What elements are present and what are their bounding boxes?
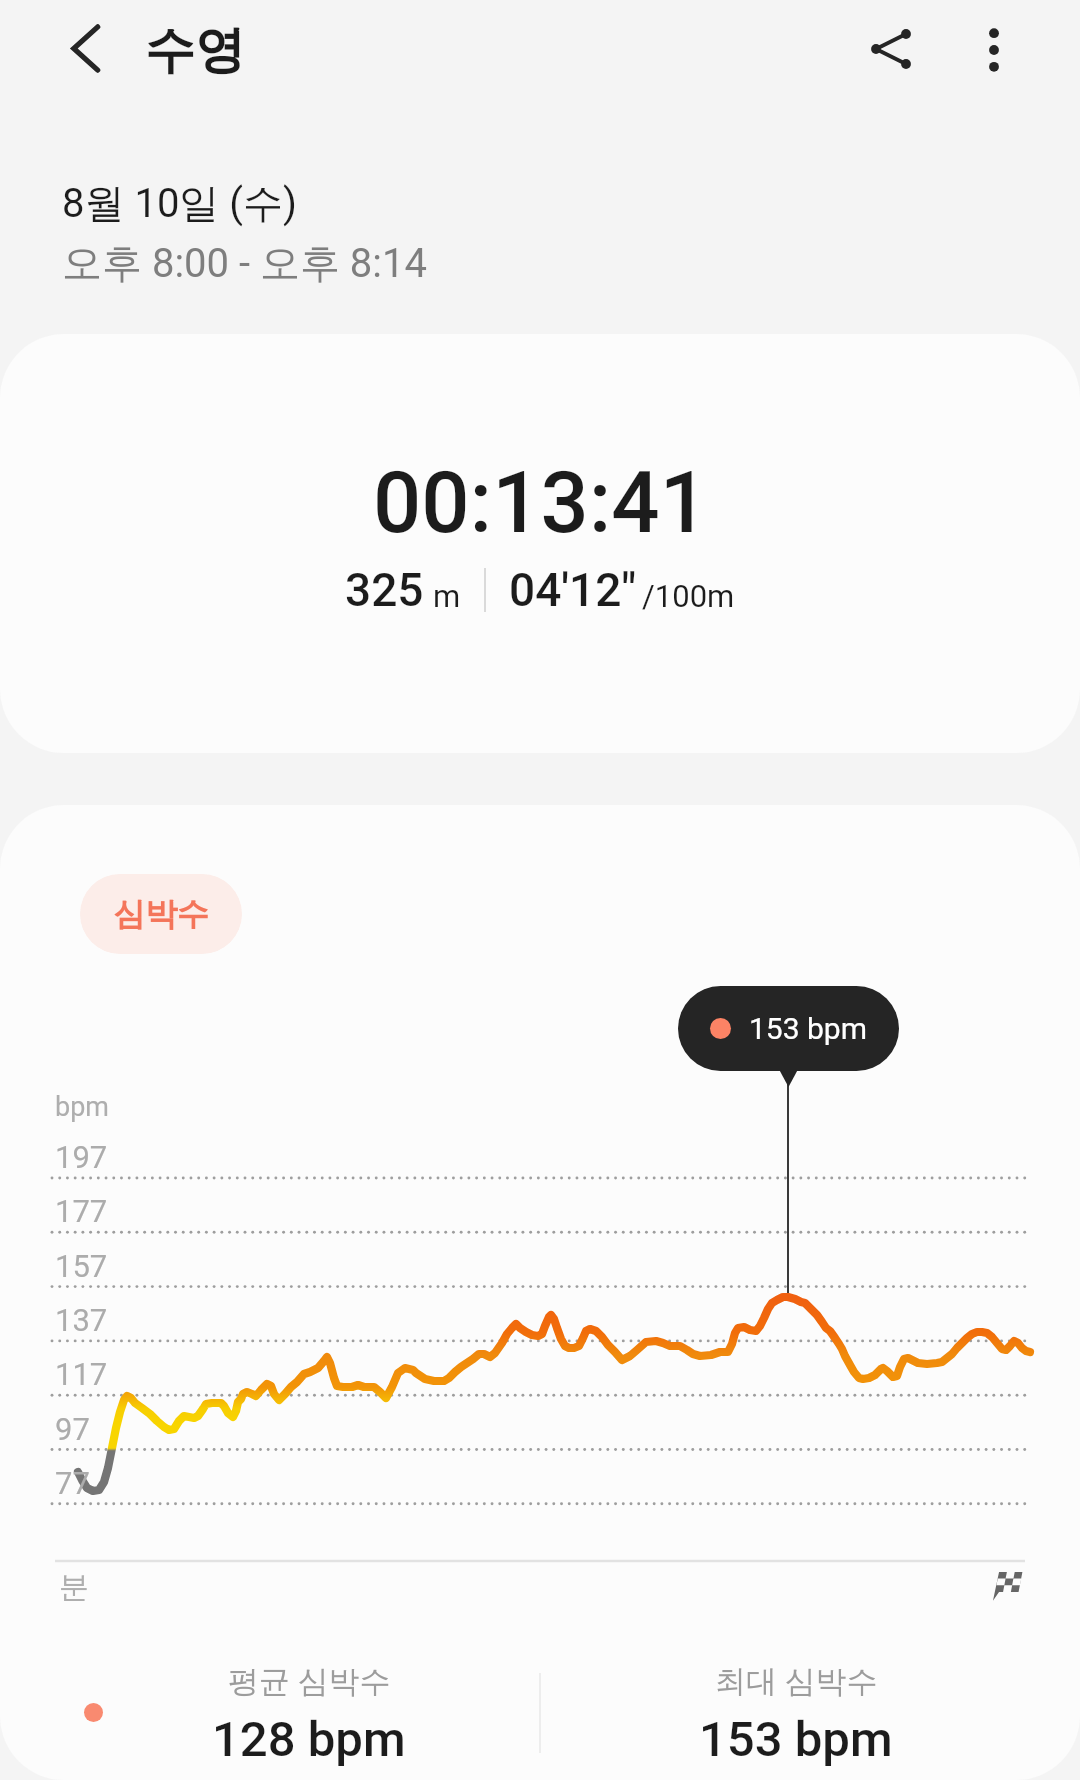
staticText: 177	[55, 1193, 108, 1229]
staticText: 04'12"	[509, 563, 637, 617]
staticText: 157	[55, 1248, 108, 1284]
button[interactable]: More options	[946, 2, 1042, 98]
staticText: 00:13:41	[373, 453, 708, 553]
staticText: 77	[55, 1465, 90, 1501]
staticText: bpm	[55, 1091, 109, 1123]
staticText: 오후 8:00 - 오후 8:14	[62, 238, 427, 288]
staticText: 심박수	[113, 894, 209, 934]
staticText: m	[433, 578, 461, 614]
staticText: 325	[345, 563, 424, 617]
staticText: 분	[59, 1568, 89, 1606]
button[interactable]: 심박수	[80, 874, 242, 954]
staticText: 153 bpm	[749, 1011, 868, 1046]
staticText: 수영	[145, 19, 245, 82]
button[interactable]: Share	[845, 1, 941, 97]
other: Finish	[992, 1571, 1024, 1601]
staticText: 197	[55, 1139, 108, 1175]
staticText: 153 bpm	[699, 1711, 893, 1768]
staticText: 97	[55, 1411, 90, 1447]
staticText: 128 bpm	[212, 1711, 406, 1768]
staticText: 평균 심박수	[228, 1662, 391, 1701]
staticText: 117	[55, 1356, 108, 1392]
staticText: 8월 10일 (수)	[62, 178, 297, 228]
staticText: 최대 심박수	[715, 1662, 878, 1701]
button[interactable]: 153 bpm	[678, 986, 899, 1071]
button[interactable]: Back	[37, 0, 133, 96]
staticText: 137	[55, 1302, 108, 1338]
button[interactable]: 00:13:41	[0, 334, 1080, 753]
staticText: /100m	[642, 578, 735, 614]
